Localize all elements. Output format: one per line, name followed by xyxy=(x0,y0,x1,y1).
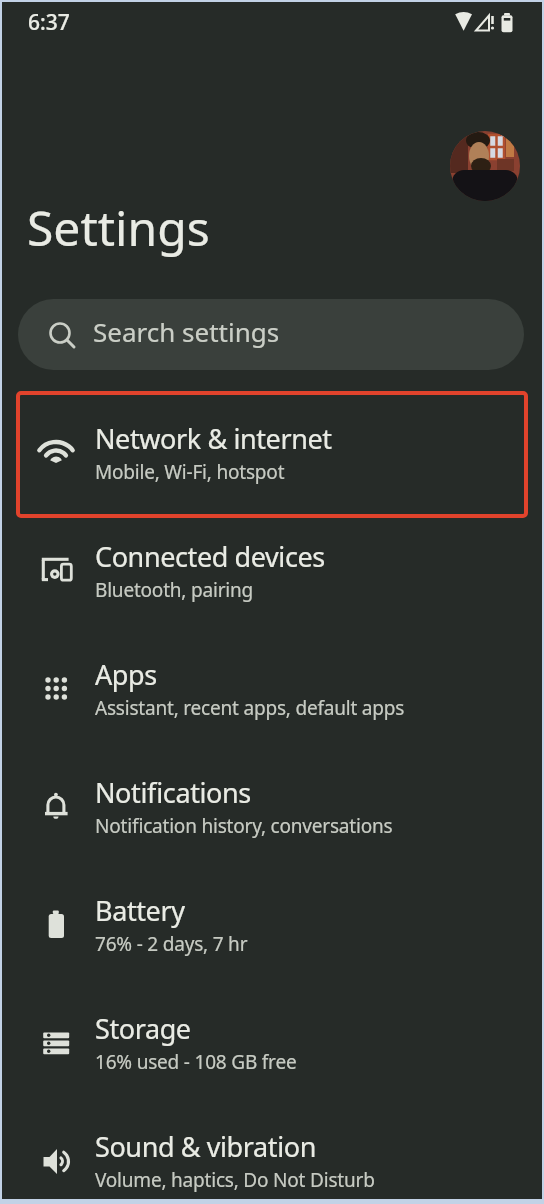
staticText: Notifications xyxy=(95,774,251,811)
button[interactable] xyxy=(450,131,520,201)
button[interactable]: Notifications xyxy=(0,747,544,865)
staticText: Mobile, Wi-Fi, hotspot xyxy=(95,459,285,485)
staticText: Search settings xyxy=(93,314,280,349)
staticText: Volume, haptics, Do Not Disturb xyxy=(95,1167,375,1193)
button[interactable]: Search settings xyxy=(18,299,524,370)
button[interactable]: Apps xyxy=(0,629,544,747)
staticText: Bluetooth, pairing xyxy=(95,577,254,603)
staticText: Settings xyxy=(27,195,210,260)
staticText: Apps xyxy=(95,656,157,693)
staticText: Storage xyxy=(95,1010,191,1047)
button[interactable]: Storage xyxy=(0,983,544,1101)
staticText: Battery xyxy=(95,892,185,929)
staticText: Sound & vibration xyxy=(95,1128,316,1165)
button[interactable]: Connected devices xyxy=(0,511,544,629)
button[interactable]: Network & internet xyxy=(0,393,544,511)
staticText: 16% used - 108 GB free xyxy=(95,1049,297,1075)
staticText: Assistant, recent apps, default apps xyxy=(95,695,405,721)
staticText: Connected devices xyxy=(95,538,325,575)
button[interactable]: Sound & vibration xyxy=(0,1101,544,1204)
button[interactable]: Battery xyxy=(0,865,544,983)
staticText: 76% - 2 days, 7 hr xyxy=(95,931,248,957)
staticText: Network & internet xyxy=(95,420,332,457)
staticText: 6:37 xyxy=(28,8,70,37)
staticText: Notification history, conversations xyxy=(95,813,393,839)
